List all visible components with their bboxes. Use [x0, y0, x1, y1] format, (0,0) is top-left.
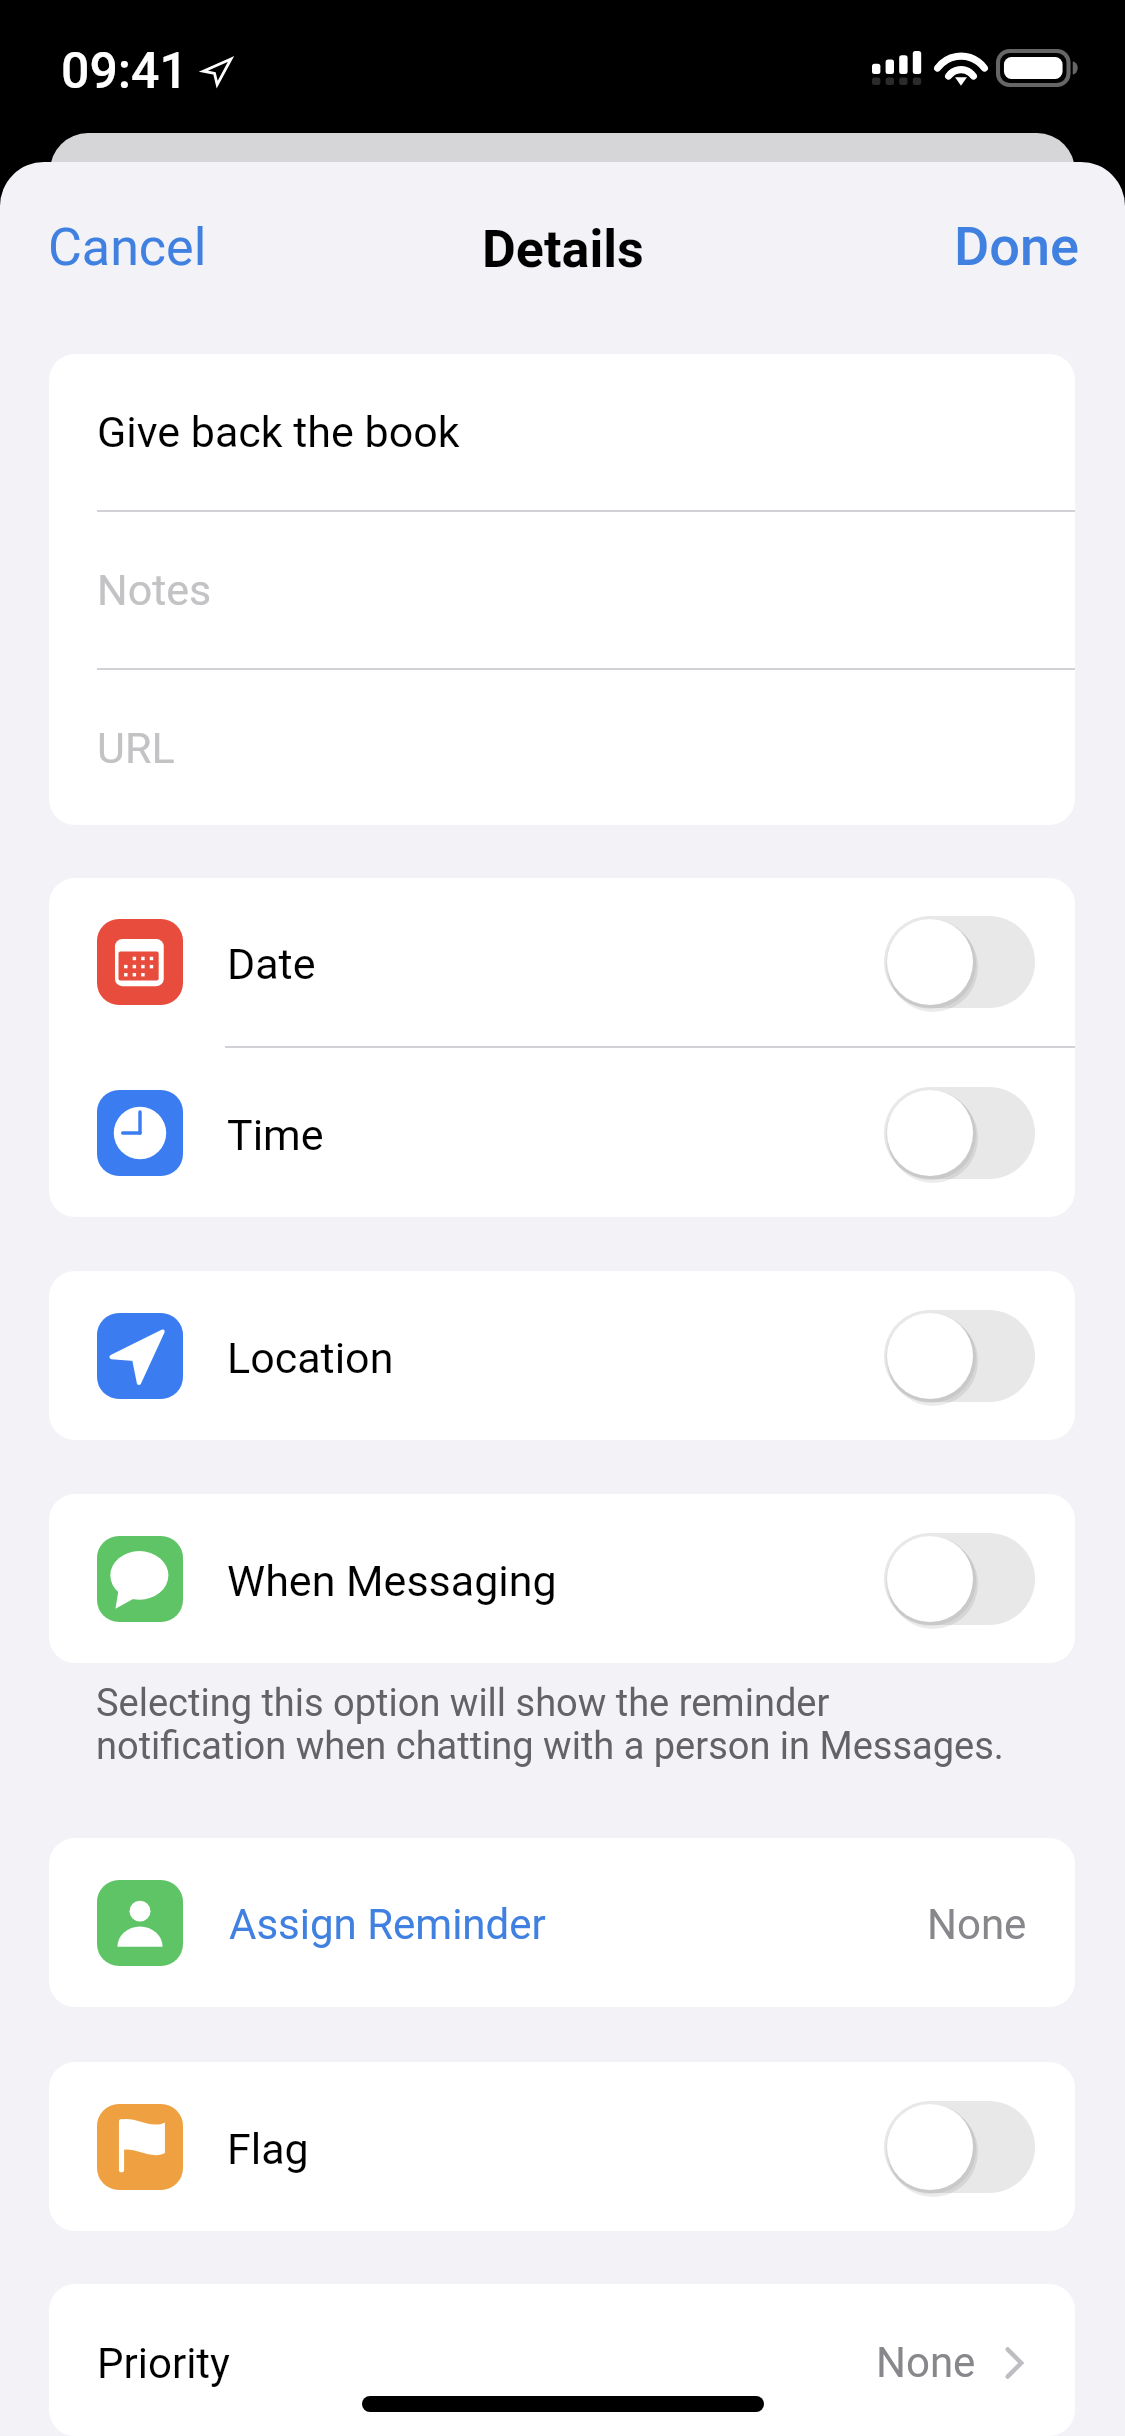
staticText: Give back the book — [97, 407, 460, 457]
button[interactable]: When Messaging — [49, 1494, 1075, 1663]
staticText: 09:41 — [61, 42, 188, 101]
staticText: None — [876, 2338, 976, 2387]
staticText: Notes — [97, 565, 212, 615]
button[interactable]: Time — [49, 1048, 1075, 1217]
button[interactable]: Flag — [49, 2062, 1075, 2231]
other: Cellular signal — [872, 51, 920, 85]
staticText: Time — [227, 1110, 324, 1160]
button[interactable]: Notes — [49, 512, 1075, 668]
staticText: Assign Reminder — [229, 1900, 546, 1949]
other: Location services active — [200, 55, 233, 88]
staticText: Location — [227, 1333, 394, 1383]
other: Open priority picker — [1004, 2346, 1024, 2380]
button[interactable]: Flag, off — [884, 2101, 1035, 2193]
button[interactable]: Priority — [49, 2284, 1075, 2436]
button[interactable]: Date — [49, 878, 1075, 1046]
staticText: Flag — [227, 2124, 309, 2174]
staticText: Cancel — [48, 217, 207, 278]
staticText: When Messaging — [227, 1556, 557, 1606]
button[interactable]: Date, off — [884, 916, 1035, 1008]
button[interactable]: URL — [49, 670, 1075, 825]
other: Battery full — [998, 51, 1080, 85]
button[interactable]: Assign Reminder — [49, 1838, 1075, 2007]
button[interactable]: Give back the book — [49, 354, 1075, 510]
other: Wi-Fi — [937, 51, 985, 85]
button[interactable]: Cancel — [0, 204, 247, 296]
button[interactable]: Location — [49, 1271, 1075, 1440]
button[interactable]: Time, off — [884, 1087, 1035, 1179]
button[interactable]: When Messaging, off — [884, 1533, 1035, 1625]
staticText: Selecting this option will show the remi… — [96, 1681, 1085, 1768]
button[interactable]: Location, off — [884, 1310, 1035, 1402]
staticText: Done — [954, 215, 1080, 278]
staticText: Date — [227, 939, 316, 989]
staticText: None — [927, 1900, 1027, 1949]
staticText: Priority — [97, 2339, 230, 2388]
staticText: Details — [482, 219, 644, 280]
button[interactable]: Done — [914, 204, 1125, 296]
staticText: URL — [97, 723, 175, 773]
